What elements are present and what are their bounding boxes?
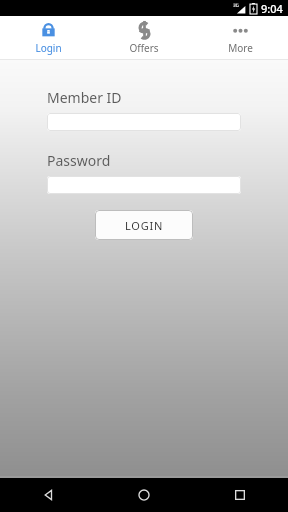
button[interactable] xyxy=(47,113,241,131)
button[interactable]: Home xyxy=(96,478,192,512)
staticText: More xyxy=(228,41,253,55)
staticText: 9:04 xyxy=(261,1,283,16)
button[interactable]: Back xyxy=(0,478,96,512)
staticText: Login xyxy=(35,41,62,55)
button[interactable]: Login xyxy=(0,16,96,55)
button[interactable]: Recents xyxy=(192,478,288,512)
button[interactable]: LOGIN xyxy=(95,210,193,240)
staticText: Offers xyxy=(129,41,159,55)
button[interactable] xyxy=(47,176,241,194)
button[interactable]: Offers xyxy=(96,16,192,55)
staticText: LOGIN xyxy=(125,218,164,233)
button[interactable]: More xyxy=(192,16,288,55)
staticText: Password xyxy=(47,151,111,170)
staticText: Member ID xyxy=(47,88,122,107)
